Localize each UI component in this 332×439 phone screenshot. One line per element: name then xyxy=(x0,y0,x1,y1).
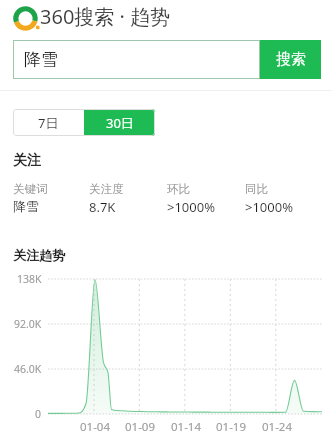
staticText: >1000% xyxy=(245,198,293,216)
staticText: 关注度 xyxy=(89,182,124,196)
other: 360 Search logo xyxy=(13,6,38,31)
staticText: 0 xyxy=(35,407,42,421)
staticText: 92.0K xyxy=(14,317,42,331)
staticText: 46.0K xyxy=(14,362,42,376)
button[interactable]: 搜索 xyxy=(260,40,321,79)
staticText: 同比 xyxy=(245,182,268,196)
staticText: >1000% xyxy=(167,198,215,216)
staticText: 关注趋势 xyxy=(13,247,65,263)
button[interactable]: 7日 xyxy=(13,109,84,136)
staticText: 关键词 xyxy=(13,182,48,196)
staticText: 30日 xyxy=(106,114,134,132)
staticText: 7日 xyxy=(38,114,59,132)
staticText: 01-19 xyxy=(216,419,247,435)
staticText: 01-24 xyxy=(262,419,293,435)
staticText: 环比 xyxy=(167,182,190,196)
staticText: 01-09 xyxy=(125,419,156,435)
staticText: 01-04 xyxy=(80,419,111,435)
staticText: 138K xyxy=(17,272,42,286)
staticText: 搜索 xyxy=(276,50,306,69)
staticText: 降雪 xyxy=(24,49,58,70)
staticText: 8.7K xyxy=(89,198,116,216)
staticText: 360搜索 · 趋势 xyxy=(40,3,171,30)
button[interactable]: 降雪 xyxy=(13,40,260,79)
staticText: 01-14 xyxy=(171,419,202,435)
staticText: 降雪 xyxy=(13,198,39,214)
staticText: 关注 xyxy=(13,152,41,170)
button[interactable]: 30日 xyxy=(84,109,155,136)
